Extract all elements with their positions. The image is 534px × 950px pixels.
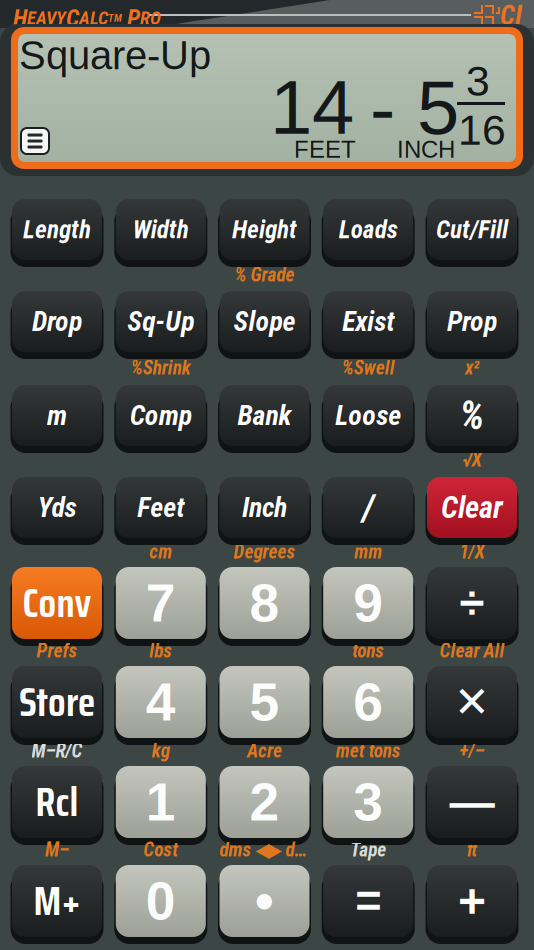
staticText: Prop [447, 305, 497, 338]
staticText: % Grade [234, 264, 294, 286]
button[interactable]: 6 [322, 666, 415, 748]
button[interactable]: Cut/Fill [425, 199, 518, 270]
staticText: Clear All [439, 640, 504, 662]
staticText: cm [149, 541, 172, 563]
button[interactable]: Exist [322, 291, 415, 362]
button[interactable]: Loose [322, 385, 415, 456]
staticText: tons [352, 640, 384, 662]
button[interactable]: m [10, 385, 103, 456]
staticText: CI [500, 0, 522, 31]
button[interactable]: Sq-Up [114, 291, 207, 362]
staticText: ÷ [459, 578, 484, 628]
button[interactable]: 7 [114, 567, 207, 649]
button[interactable]: + [425, 865, 518, 947]
button[interactable]: % [425, 385, 518, 456]
staticText: m [47, 399, 67, 432]
button[interactable]: Conv [10, 567, 103, 649]
staticText: / [362, 486, 374, 529]
staticText: 4 [146, 672, 176, 732]
staticText: Yds [37, 491, 76, 524]
staticText: dms ◀▶ deg [219, 839, 309, 861]
staticText: Prefs [36, 640, 77, 662]
staticText: Exist [342, 305, 394, 338]
staticText: Rcl [35, 770, 78, 833]
staticText: FEET [294, 136, 356, 163]
button[interactable]: Length [10, 199, 103, 270]
button[interactable]: ✕ [425, 666, 518, 748]
button[interactable]: 5 [218, 666, 311, 748]
staticText: Conv [22, 571, 91, 634]
button[interactable]: 3 [322, 766, 415, 848]
staticText: ALC [79, 7, 108, 29]
staticText: 9 [353, 573, 383, 633]
staticText: — [449, 777, 494, 827]
button[interactable]: Inch [218, 477, 311, 548]
staticText: ✕ [454, 677, 490, 727]
staticText: 5 [417, 65, 459, 150]
button[interactable]: — [425, 766, 518, 848]
staticText: Comp [130, 399, 192, 432]
button[interactable]: Drop [10, 291, 103, 362]
button[interactable]: Rcl [10, 766, 103, 848]
staticText: 14 [270, 65, 354, 150]
staticText: Square-Up [19, 33, 211, 78]
staticText: % [459, 392, 484, 439]
staticText: EAVY [27, 7, 66, 29]
staticText: M– [45, 839, 69, 861]
button[interactable]: / [322, 477, 415, 548]
button[interactable]: Feet [114, 477, 207, 548]
staticText: Drop [32, 305, 82, 338]
staticText: π [466, 839, 477, 861]
staticText: 7 [146, 573, 176, 633]
staticText: INCH [397, 136, 455, 163]
button[interactable]: M+ [10, 865, 103, 947]
button[interactable]: Bank [218, 385, 311, 456]
staticText: lbs [149, 640, 172, 662]
button[interactable]: Store [10, 666, 103, 748]
button[interactable]: = [322, 865, 415, 947]
staticText: kg [152, 740, 170, 762]
staticText: C [66, 4, 79, 32]
staticText: met tons [336, 740, 401, 762]
staticText: 6 [353, 672, 383, 732]
button[interactable]: • [218, 865, 311, 947]
button[interactable]: 2 [218, 766, 311, 848]
button[interactable]: 4 [114, 666, 207, 748]
button[interactable]: ÷ [425, 567, 518, 649]
button[interactable]: Menu [20, 127, 50, 155]
staticText: Feet [137, 491, 184, 524]
button[interactable]: Width [114, 199, 207, 270]
staticText: Cut/Fill [436, 215, 508, 244]
staticText: Sq-Up [127, 305, 194, 338]
button[interactable]: Height [218, 199, 311, 270]
staticText: 8 [249, 573, 279, 633]
staticText: 1/X [459, 541, 484, 563]
staticText: Inch [242, 491, 287, 524]
staticText: mm [354, 541, 382, 563]
button[interactable]: Clear [425, 477, 518, 548]
button[interactable]: Yds [10, 477, 103, 548]
button[interactable]: Prop [425, 291, 518, 362]
button[interactable]: Comp [114, 385, 207, 456]
staticText: Length [23, 215, 91, 244]
staticText: P [122, 4, 140, 32]
staticText: Clear [441, 489, 503, 525]
button[interactable]: 9 [322, 567, 415, 649]
button[interactable]: Loads [322, 199, 415, 270]
staticText: M+ [33, 869, 80, 932]
staticText: TM [108, 12, 122, 24]
staticText: RO [140, 7, 161, 29]
button[interactable]: Slope [218, 291, 311, 362]
staticText: +/– [459, 740, 484, 762]
staticText: Loads [339, 215, 398, 244]
button[interactable]: 8 [218, 567, 311, 649]
button[interactable]: 1 [114, 766, 207, 848]
staticText: 0 [146, 871, 176, 931]
staticText: 1 [146, 772, 176, 832]
staticText: x² [465, 357, 479, 379]
staticText: Cost [143, 839, 178, 861]
staticText: 3 [353, 772, 383, 832]
staticText: %Shrink [131, 357, 191, 379]
staticText: H [13, 4, 27, 32]
button[interactable]: 0 [114, 865, 207, 947]
